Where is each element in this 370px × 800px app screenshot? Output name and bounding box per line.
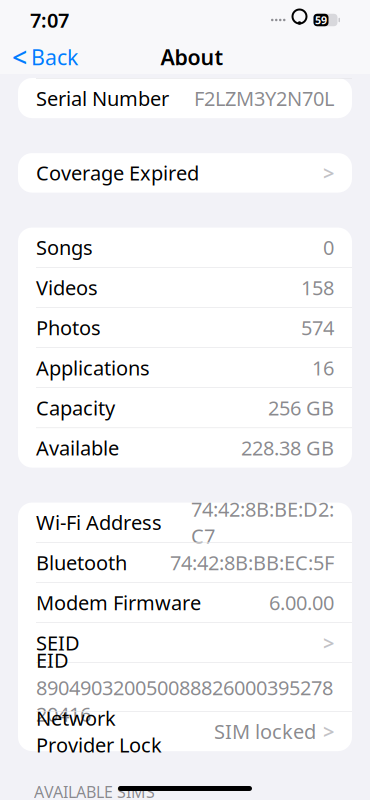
- staticText: 16: [312, 354, 334, 381]
- staticText: F2LZM3Y2N70L: [194, 85, 334, 112]
- staticText: AVAILABLE SIMS: [34, 781, 155, 800]
- staticText: 158: [301, 274, 334, 301]
- staticText: Photos: [36, 314, 101, 341]
- staticText: Network Provider Lock: [36, 705, 162, 758]
- staticText: Applications: [36, 354, 150, 381]
- staticText: 74:42:8B:BE:D2:C7: [191, 496, 334, 549]
- staticText: 7:07: [30, 7, 69, 33]
- staticText: About: [160, 43, 223, 71]
- staticText: Bluetooth: [36, 549, 127, 576]
- staticText: >: [323, 718, 334, 745]
- staticText: Songs: [36, 234, 93, 261]
- staticText: Back: [31, 43, 78, 71]
- staticText: Serial Number: [36, 85, 169, 112]
- button[interactable]: <: [0, 33, 88, 81]
- staticText: Capacity: [36, 394, 115, 421]
- staticText: Coverage Expired: [36, 160, 199, 186]
- staticText: Wi-Fi Address: [36, 509, 162, 536]
- staticText: Videos: [36, 274, 98, 301]
- button[interactable]: Network Provider Lock: [18, 712, 352, 751]
- staticText: 74:42:8B:BB:EC:5F: [170, 549, 334, 576]
- staticText: 89049032005008882600039527820416: [36, 674, 333, 727]
- staticText: 59: [315, 13, 327, 27]
- staticText: 0: [323, 234, 334, 261]
- staticText: 574: [301, 314, 334, 341]
- staticText: >: [323, 629, 334, 656]
- staticText: 6.00.00: [269, 589, 334, 616]
- button[interactable]: Coverage Expired: [18, 153, 352, 193]
- staticText: Available: [36, 435, 119, 461]
- staticText: SEID: [36, 629, 80, 656]
- staticText: 228.38 GB: [241, 435, 334, 461]
- staticText: SIM locked: [214, 718, 316, 745]
- staticText: 256 GB: [268, 394, 334, 421]
- staticText: Modem Firmware: [36, 589, 201, 616]
- button[interactable]: SEID: [18, 623, 352, 662]
- staticText: >: [323, 160, 334, 186]
- staticText: <: [12, 39, 27, 75]
- staticText: EID: [36, 647, 69, 673]
